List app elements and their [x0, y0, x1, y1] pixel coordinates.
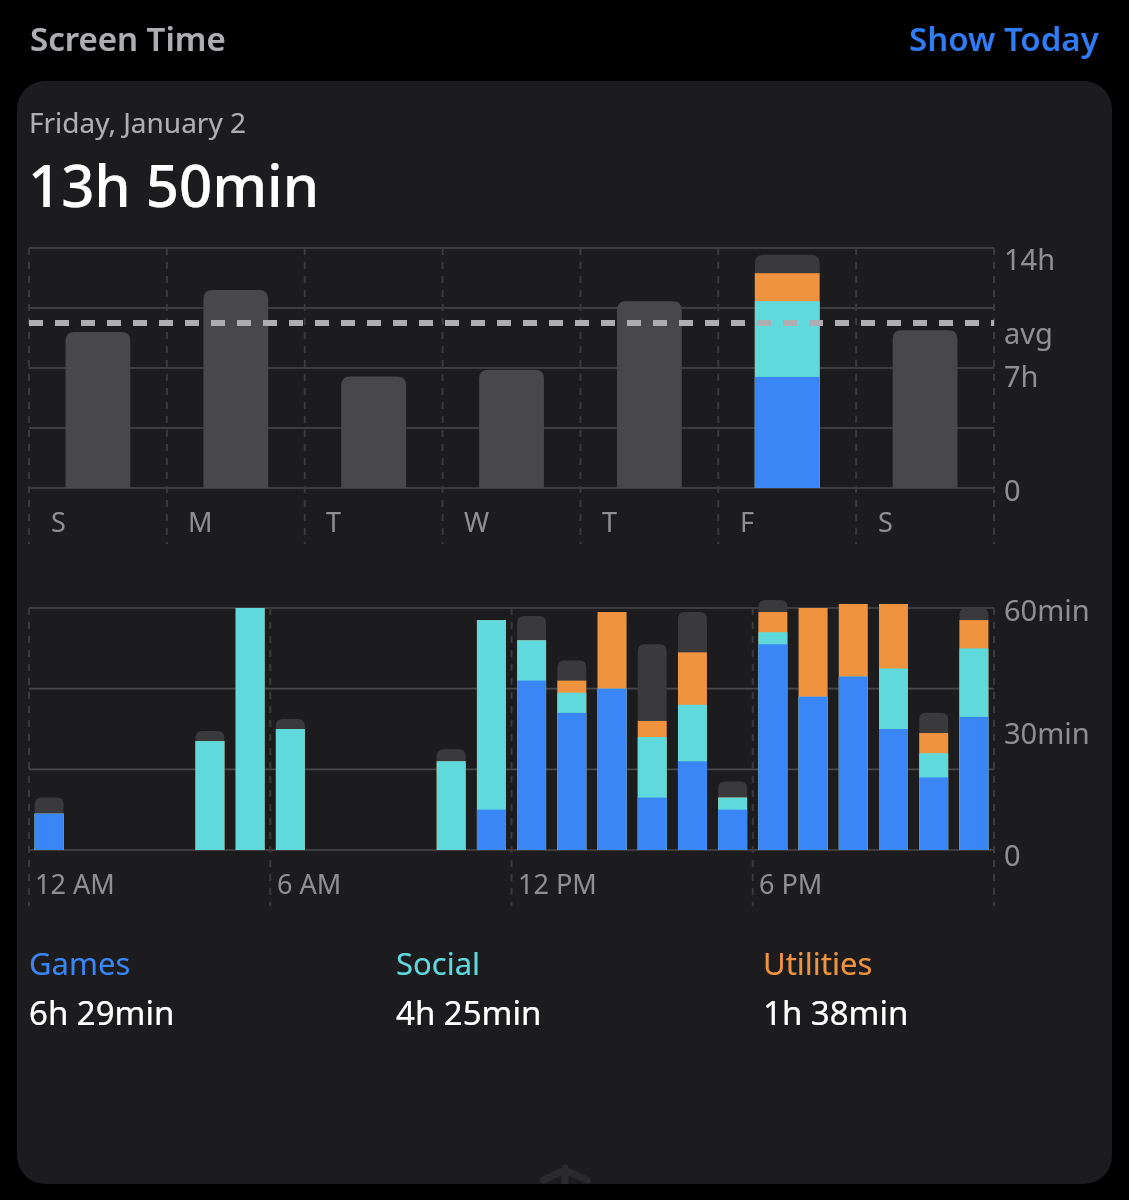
staticText: S [51, 503, 66, 540]
staticText: 12 AM [35, 865, 115, 902]
staticText: avg [1004, 313, 1053, 352]
staticText: Games [29, 942, 131, 984]
staticText: T [326, 503, 342, 540]
staticText: Social [396, 942, 481, 984]
staticText: 1h 38min [763, 990, 909, 1035]
staticText: S [878, 503, 893, 540]
staticText: 0 [1004, 470, 1021, 509]
staticText: 60min [1004, 590, 1090, 629]
staticText: T [602, 503, 618, 540]
button[interactable]: Friday, January 2 [17, 81, 1112, 1184]
staticText: 14h [1004, 239, 1056, 278]
button[interactable]: Social [396, 942, 763, 1035]
staticText: M [188, 503, 213, 540]
staticText: 6 AM [277, 865, 342, 902]
staticText: Screen Time [30, 16, 226, 61]
staticText: Utilities [763, 942, 873, 984]
button[interactable]: Show Today [909, 16, 1099, 61]
staticText: 12 PM [518, 865, 597, 902]
staticText: 0 [1004, 835, 1021, 874]
staticText: W [464, 503, 490, 540]
staticText: 6h 29min [29, 990, 175, 1035]
staticText: F [740, 503, 755, 540]
staticText: Friday, January 2 [29, 103, 247, 141]
staticText: 7h [1004, 356, 1039, 395]
staticText: 13h 50min [28, 145, 320, 224]
staticText: 30min [1004, 713, 1090, 752]
button[interactable]: Games [29, 942, 396, 1035]
other: Collapse [542, 1166, 588, 1184]
staticText: 4h 25min [396, 990, 542, 1035]
button[interactable]: Utilities [763, 942, 1100, 1035]
staticText: Show Today [909, 16, 1099, 61]
staticText: 6 PM [759, 865, 823, 902]
